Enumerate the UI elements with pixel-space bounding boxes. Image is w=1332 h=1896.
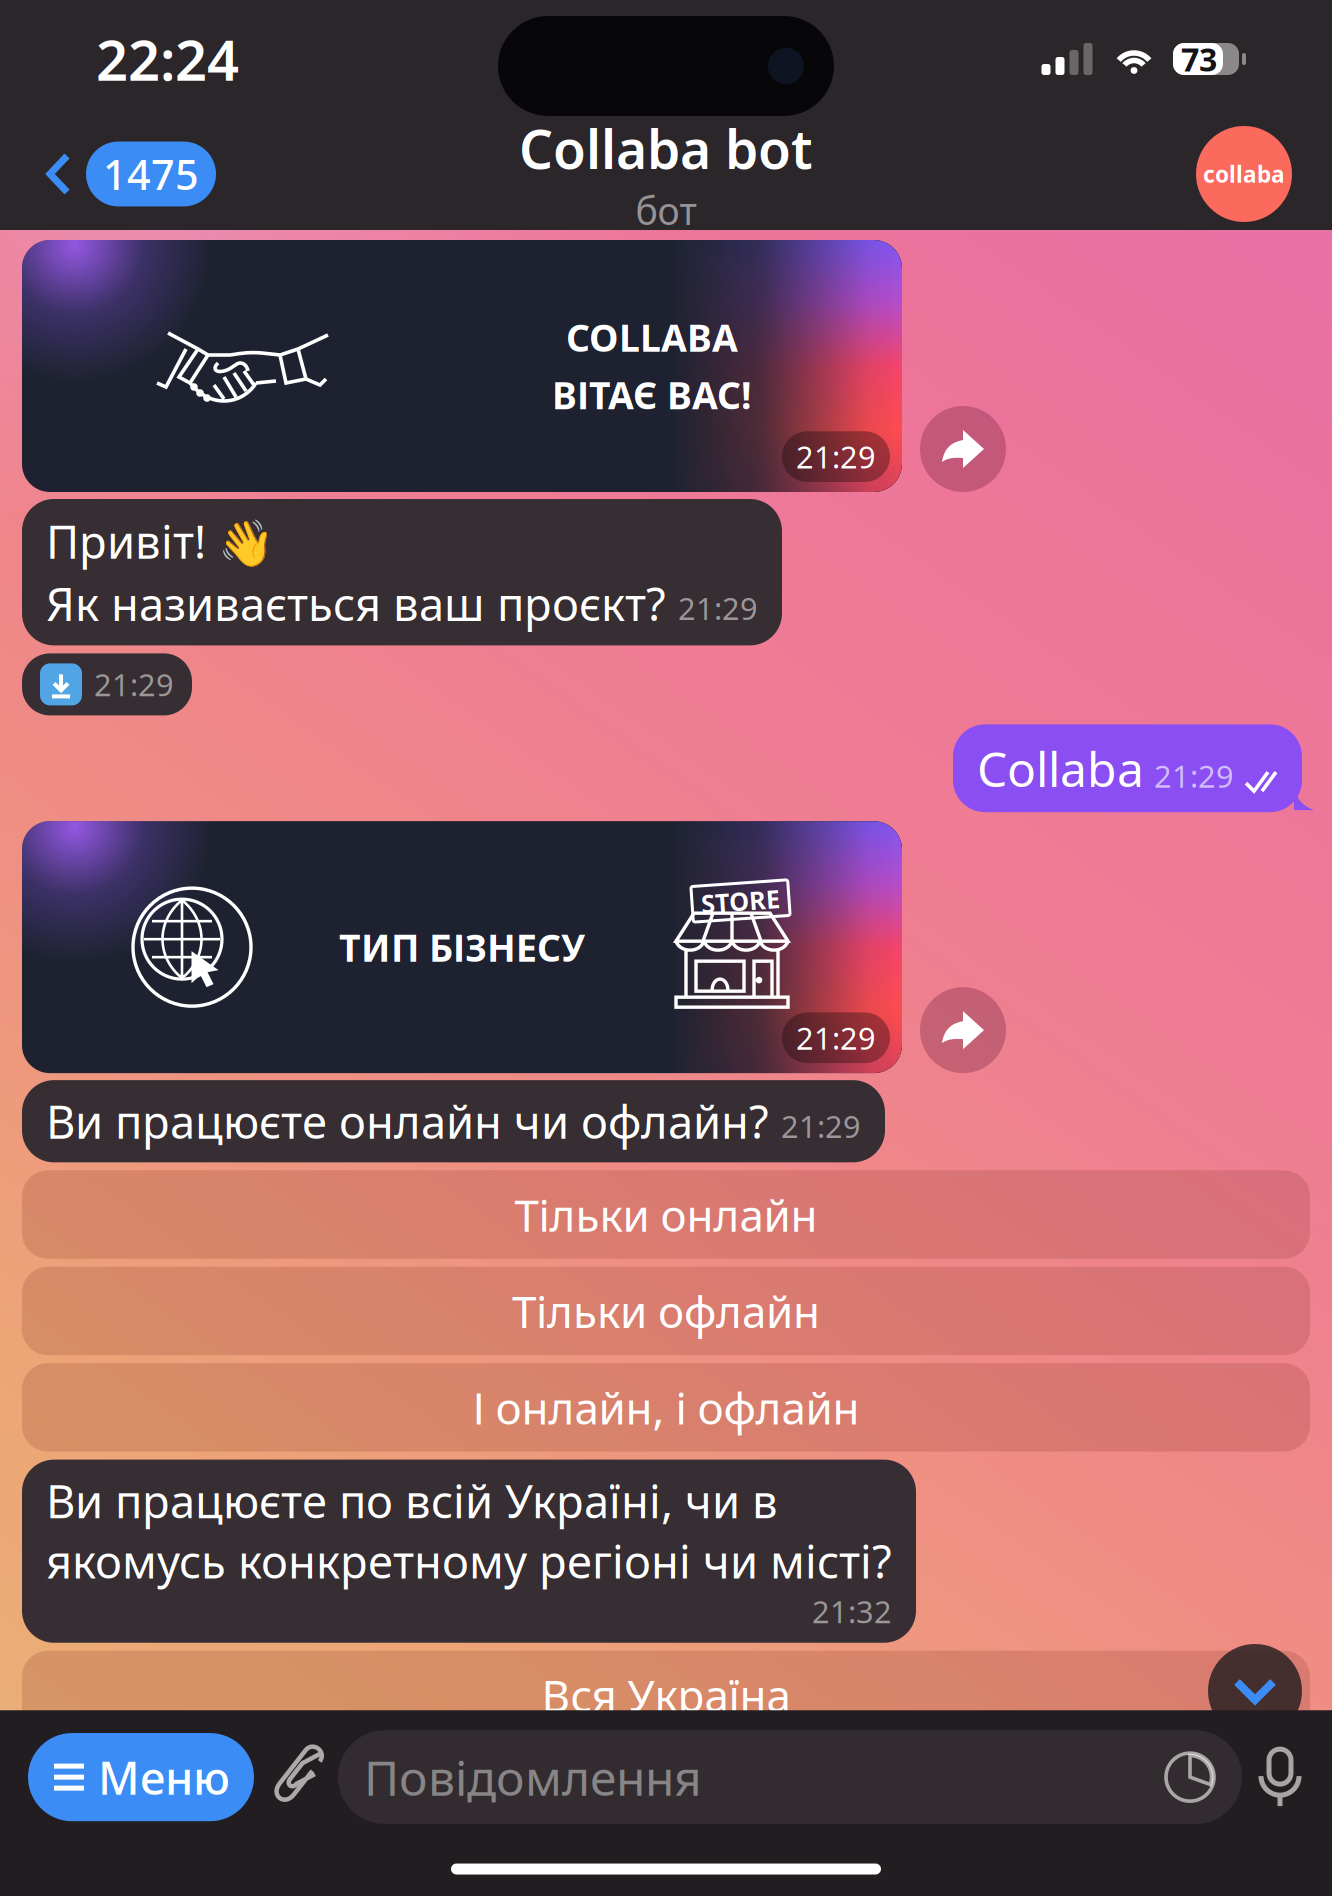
staticText: Ви працюєте онлайн чи офлайн? (46, 1091, 769, 1151)
staticText: Тільки онлайн (514, 1185, 817, 1244)
staticText: collaba (1203, 159, 1285, 189)
staticText: Привіт! 👋 (46, 511, 274, 571)
staticText: Collaba bot (519, 113, 813, 184)
staticText: ТИП БІЗНЕСУ (339, 922, 585, 972)
staticText: 21:29 (678, 588, 758, 628)
button[interactable]: Forward (920, 406, 1006, 492)
staticText: Тільки офлайн (512, 1282, 820, 1340)
staticText: 73 (1181, 38, 1217, 80)
staticText: бот (635, 186, 696, 235)
button[interactable]: 1475 (0, 128, 216, 220)
staticText: 21:32 (812, 1591, 892, 1632)
button[interactable]: Тільки офлайн (22, 1267, 1310, 1355)
staticText: Вся Україна (541, 1666, 790, 1724)
staticText: 21:29 (781, 1106, 861, 1146)
staticText: 1475 (103, 147, 199, 201)
button[interactable]: І онлайн, і офлайн (22, 1363, 1310, 1452)
button[interactable]: Меню (28, 1733, 254, 1821)
button[interactable]: ТИП БІЗНЕСУ (22, 821, 902, 1073)
staticText: І онлайн, і офлайн (472, 1378, 859, 1437)
staticText: Ви працюєте по всій Україні, чи в якомус… (46, 1471, 892, 1591)
staticText: 21:29 (796, 1017, 876, 1058)
button[interactable]: Вся Україна (22, 1651, 1310, 1739)
button[interactable]: Тільки онлайн (22, 1170, 1310, 1259)
button[interactable]: Attach (268, 1746, 324, 1808)
staticText: 22:24 (96, 22, 239, 96)
staticText: STORE (701, 884, 780, 918)
staticText: Меню (98, 1747, 230, 1807)
staticText: 21:29 (796, 436, 876, 477)
button[interactable]: COLLABA ВІТАЄ ВАС! (22, 240, 902, 492)
staticText: ВІТАЄ ВАС! (552, 370, 752, 420)
button[interactable]: Forward (920, 987, 1006, 1073)
button[interactable]: Chat info (1196, 126, 1332, 222)
staticText: Collaba (977, 736, 1144, 800)
staticText: Як називається ваш проєкт? (46, 573, 666, 633)
staticText: Повідомлення (364, 1745, 702, 1809)
button[interactable]: Self-destruct timer (1164, 1751, 1216, 1803)
button[interactable]: Record voice message (1256, 1746, 1304, 1808)
staticText: COLLABA (566, 312, 738, 362)
staticText: 21:29 (1154, 755, 1234, 796)
button[interactable]: Scroll to bottom (1208, 1644, 1302, 1738)
staticText: 21:29 (94, 664, 174, 705)
